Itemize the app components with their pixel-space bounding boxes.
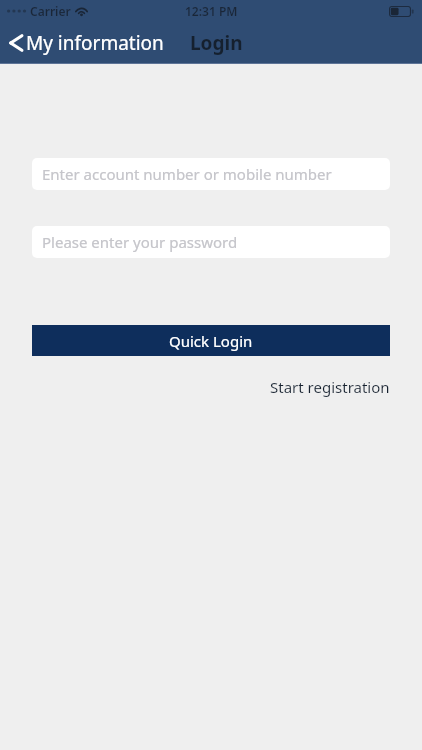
- button[interactable]: Start registration: [270, 375, 422, 399]
- staticText: Start registration: [270, 377, 390, 397]
- staticText: Please enter your password: [42, 232, 238, 252]
- button[interactable]: Enter account number or mobile number: [32, 158, 390, 190]
- staticText: Quick Login: [169, 331, 253, 351]
- button[interactable]: Please enter your password: [32, 226, 390, 258]
- staticText: 12:31 PM: [185, 3, 238, 19]
- staticText: Enter account number or mobile number: [42, 164, 332, 184]
- staticText: Login: [190, 30, 243, 56]
- button[interactable]: Quick Login: [32, 325, 390, 356]
- staticText: My information: [26, 30, 164, 56]
- staticText: Carrier: [30, 3, 71, 19]
- button[interactable]: My information: [0, 22, 174, 64]
